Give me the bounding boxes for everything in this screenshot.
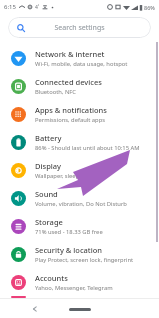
button[interactable] bbox=[0, 296, 159, 298]
staticText: Network & internet bbox=[35, 49, 105, 59]
staticText: Wi-Fi, mobile, data usage, hotspot bbox=[35, 60, 128, 68]
button[interactable]: Storage bbox=[0, 212, 159, 240]
button[interactable]: Back bbox=[28, 302, 42, 316]
button[interactable]: Apps & notifications bbox=[0, 100, 159, 128]
staticText: 86% - Should last until about 10:15 AM bbox=[35, 144, 140, 152]
staticText: Wallpaper, sleep, font size bbox=[35, 172, 106, 180]
staticText: Permissions, default apps bbox=[35, 116, 105, 124]
button[interactable]: Display bbox=[0, 156, 159, 184]
button[interactable]: Accounts bbox=[0, 268, 159, 296]
staticText: 6:15 bbox=[4, 3, 16, 11]
staticText: Bluetooth, NFC bbox=[35, 88, 77, 96]
staticText: Security & location bbox=[35, 245, 103, 255]
staticText: 86% bbox=[144, 4, 155, 11]
staticText: Volume, vibration, Do Not Disturb bbox=[35, 200, 127, 208]
button[interactable]: Battery bbox=[0, 128, 159, 156]
other: Search bbox=[17, 24, 25, 32]
staticText: Battery bbox=[35, 133, 62, 143]
button[interactable]: Connected devices bbox=[0, 72, 159, 100]
staticText: Accounts bbox=[35, 273, 68, 283]
button[interactable]: Security & location bbox=[0, 240, 159, 268]
button[interactable]: Search bbox=[8, 17, 151, 38]
staticText: Sound bbox=[35, 189, 58, 199]
button[interactable]: Home bbox=[65, 303, 95, 315]
staticText: 4˚ bbox=[35, 4, 40, 11]
staticText: 71% used - 18.33 GB free bbox=[35, 228, 103, 236]
staticText: Search settings bbox=[54, 23, 105, 33]
staticText: Yahoo, Messenger, Telegram bbox=[35, 284, 113, 292]
button[interactable]: Sound bbox=[0, 184, 159, 212]
staticText: Apps & notifications bbox=[35, 105, 107, 115]
staticText: Play Protect, screen lock, fingerprint bbox=[35, 256, 134, 264]
staticText: Connected devices bbox=[35, 77, 102, 87]
staticText: Display bbox=[35, 161, 62, 171]
staticText: Storage bbox=[35, 217, 63, 227]
button[interactable]: Network & internet bbox=[0, 44, 159, 72]
